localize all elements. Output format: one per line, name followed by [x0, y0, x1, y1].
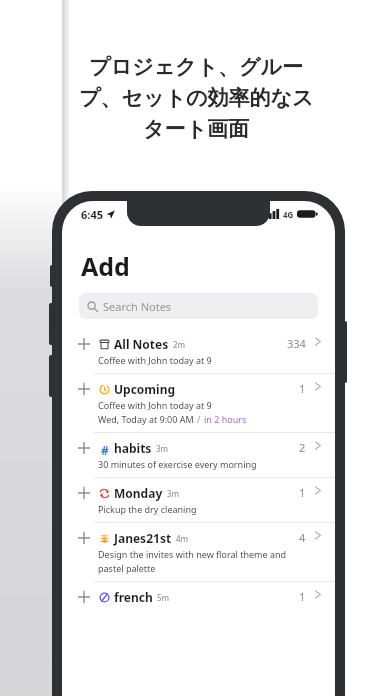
button[interactable]: Add to Monday: [62, 478, 335, 522]
staticText: Design the invites with new floral theme…: [98, 548, 287, 560]
staticText: Pickup the dry cleaning: [98, 503, 197, 515]
staticText: /: [197, 413, 201, 425]
staticText: 3m: [156, 443, 169, 454]
staticText: Janes21st: [114, 530, 172, 546]
staticText: #: [101, 442, 109, 455]
staticText: All Notes: [114, 336, 169, 352]
button[interactable]: Search Notes: [79, 293, 318, 319]
staticText: Coffee with John today at 9: [98, 399, 212, 411]
staticText: 1: [299, 589, 306, 604]
staticText: Wed, Today at 9:00 AM: [98, 413, 194, 425]
staticText: 4: [299, 530, 306, 545]
staticText: 6:45: [81, 207, 103, 222]
staticText: 5m: [157, 592, 170, 603]
button[interactable]: Add to Janes21st: [76, 530, 92, 546]
staticText: 4m: [176, 533, 189, 544]
staticText: プ、セットの効率的なス: [79, 85, 314, 111]
staticText: 30 minutes of exercise every morning: [98, 458, 257, 470]
staticText: 3m: [167, 488, 180, 499]
staticText: 2: [299, 440, 306, 455]
staticText: 1: [299, 485, 306, 500]
button[interactable]: Add to habits: [62, 433, 335, 477]
staticText: in 2 hours: [204, 413, 247, 425]
staticText: Search Notes: [103, 299, 172, 314]
staticText: 1: [299, 381, 306, 396]
button[interactable]: Add to french: [62, 582, 335, 612]
staticText: 2m: [173, 339, 186, 350]
staticText: 4G: [283, 209, 294, 220]
button[interactable]: Add to Upcoming: [62, 374, 335, 432]
button[interactable]: Add to Monday: [76, 485, 92, 501]
staticText: Add: [81, 249, 130, 283]
button[interactable]: Add to Upcoming: [76, 381, 92, 397]
button[interactable]: Add to habits: [76, 440, 92, 456]
staticText: Upcoming: [114, 381, 176, 397]
staticText: pastel palette: [98, 562, 156, 574]
button[interactable]: Add to All Notes: [62, 329, 335, 373]
staticText: french: [114, 589, 153, 605]
staticText: 334: [287, 336, 306, 351]
staticText: プロジェクト、グルー: [89, 54, 303, 80]
button[interactable]: Add to Janes21st: [62, 523, 335, 581]
staticText: Coffee with John today at 9: [98, 354, 212, 366]
button[interactable]: Add to All Notes: [76, 336, 92, 352]
staticText: habits: [114, 440, 152, 456]
staticText: Monday: [114, 485, 163, 501]
staticText: タート画面: [143, 116, 249, 142]
button[interactable]: Add to french: [76, 589, 92, 605]
